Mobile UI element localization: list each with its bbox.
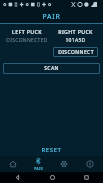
- staticText: SCAN: [44, 65, 59, 72]
- button[interactable]: PAIR: [0, 9, 103, 24]
- button[interactable]: SCAN: [3, 63, 100, 74]
- staticText: DISCONNECTED: [6, 37, 48, 44]
- staticText: PAIR: [42, 12, 61, 22]
- button[interactable]: Info: [77, 160, 103, 168]
- staticText: RESET: [41, 146, 62, 154]
- staticText: LEFT PUCK: [12, 28, 42, 35]
- button[interactable]: LEFT PUCK: [3, 28, 51, 44]
- button[interactable]: Recents: [69, 174, 103, 181]
- button[interactable]: Home: [0, 160, 25, 168]
- button[interactable]: Back: [0, 174, 35, 181]
- staticText: DISCONNECT: [58, 49, 94, 56]
- staticText: RIGHT PUCK: [58, 28, 93, 35]
- button[interactable]: Home: [35, 174, 69, 181]
- button[interactable]: Pair: [25, 157, 51, 171]
- staticText: 101A5D: [65, 37, 86, 44]
- button[interactable]: Settings: [51, 160, 77, 168]
- button[interactable]: RESET: [33, 144, 70, 156]
- button[interactable]: DISCONNECT: [53, 47, 98, 57]
- staticText: PAIR: [34, 166, 43, 171]
